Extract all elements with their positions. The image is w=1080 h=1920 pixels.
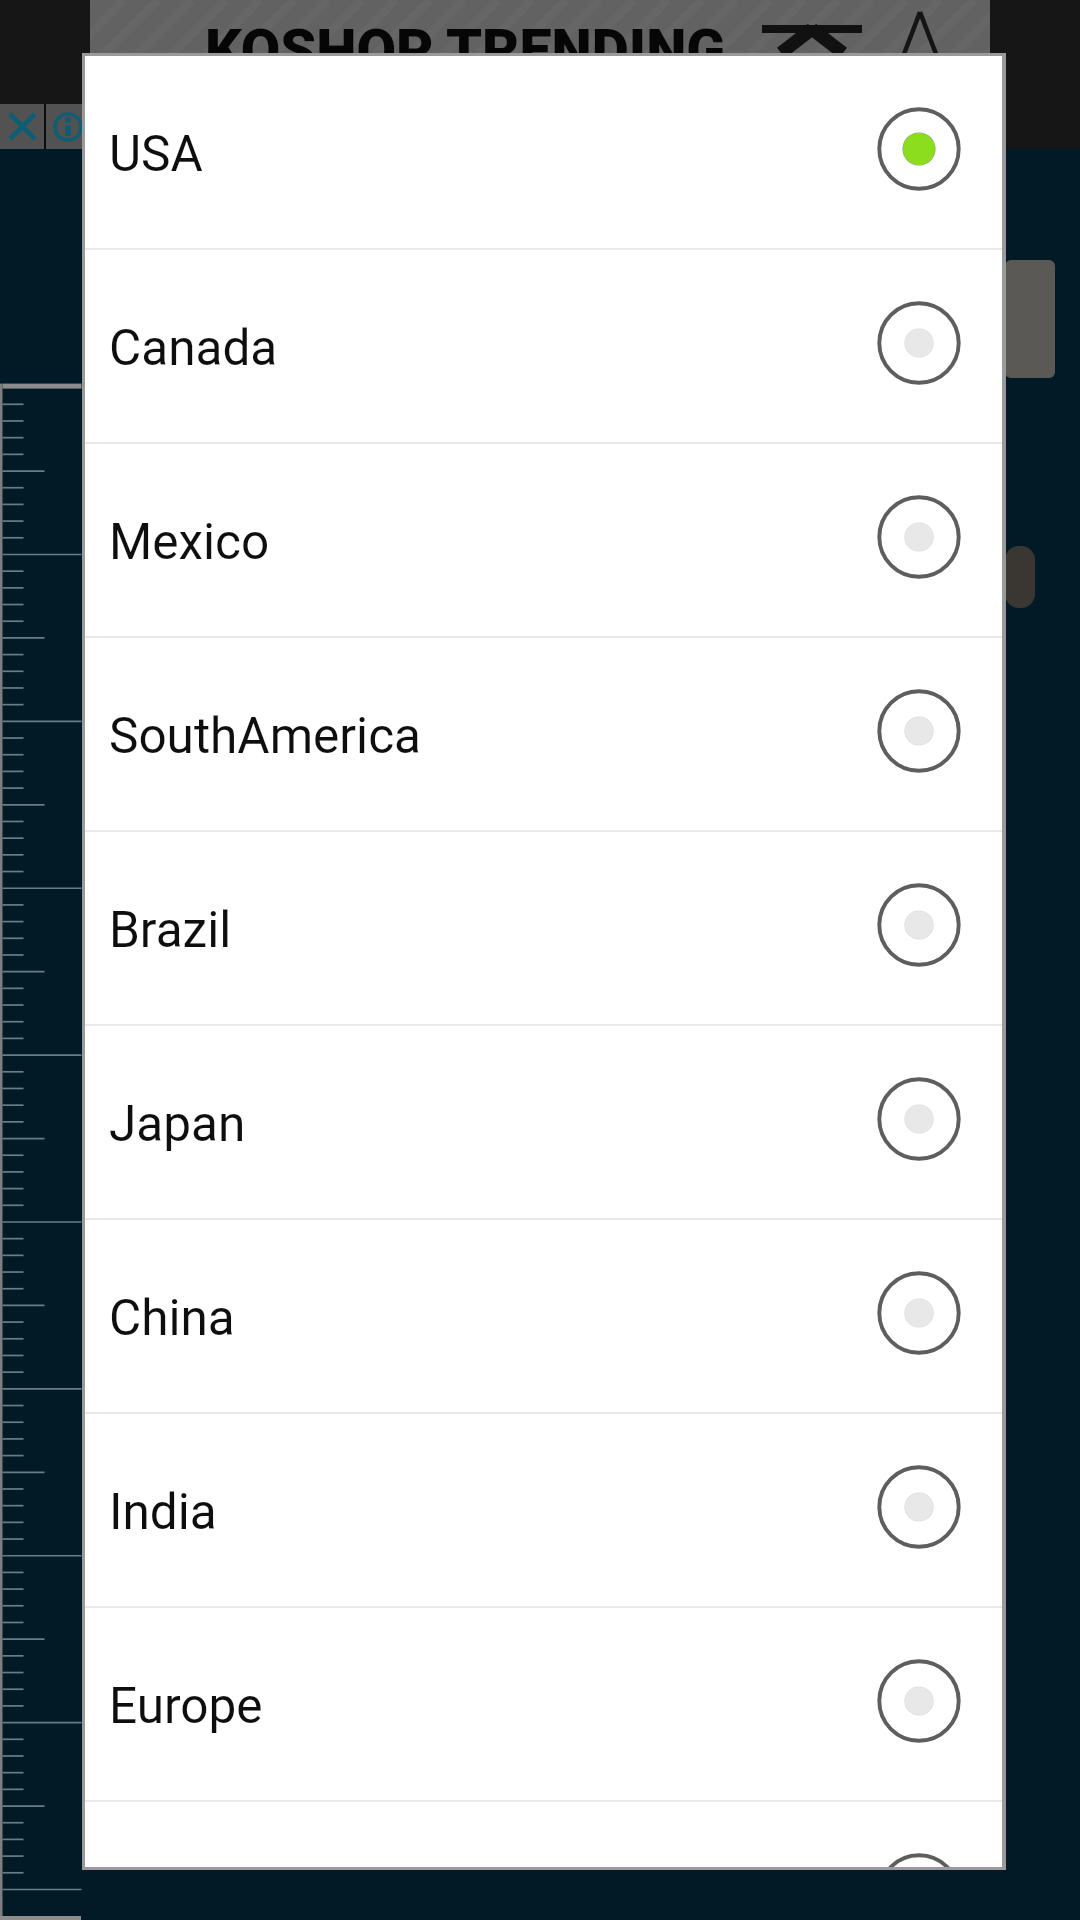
button[interactable]: Brazil	[85, 832, 1002, 1024]
button[interactable]: Info	[46, 104, 90, 149]
staticText: Canada	[109, 319, 278, 377]
button[interactable]: China	[85, 1220, 1002, 1412]
staticText: Brazil	[109, 901, 232, 959]
staticText: Europe	[109, 1677, 263, 1735]
button[interactable]: Africa	[85, 1802, 1002, 1867]
button[interactable]: Close	[0, 104, 44, 149]
staticText: KOSHOP TRENDING	[205, 17, 726, 84]
button[interactable]: SouthAmerica	[85, 638, 1002, 830]
staticText: Japan	[109, 1095, 246, 1153]
button[interactable]: USA	[85, 56, 1002, 248]
staticText: SouthAmerica	[109, 707, 421, 765]
button[interactable]: Europe	[85, 1608, 1002, 1800]
button[interactable]: India	[85, 1414, 1002, 1606]
staticText: Mexico	[109, 513, 270, 571]
staticText: India	[109, 1483, 217, 1541]
staticText: USA	[109, 125, 203, 183]
button[interactable]: Mexico	[85, 444, 1002, 636]
button[interactable]: Canada	[85, 250, 1002, 442]
button[interactable]: Japan	[85, 1026, 1002, 1218]
staticText: China	[109, 1289, 235, 1347]
